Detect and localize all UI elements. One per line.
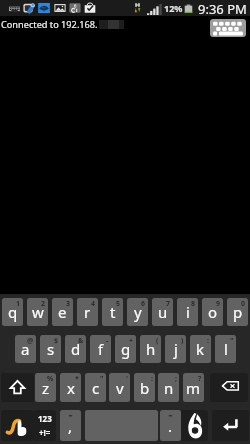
staticText: d [71,339,81,359]
button[interactable]: Select input method [210,19,246,37]
staticText: c [92,378,100,398]
staticText: 9:36 PM [198,0,247,16]
button[interactable]: Comma [60,410,81,441]
button[interactable]: v [109,373,130,402]
staticText: f [98,339,104,359]
staticText: v [116,378,124,398]
button[interactable]: r [77,298,98,326]
button[interactable]: g [115,335,136,363]
staticText: e [58,302,67,322]
button[interactable]: c [85,373,106,402]
staticText: 2 [41,299,46,309]
button[interactable]: i [177,298,198,326]
staticText: y [134,302,142,322]
staticText: s [47,339,55,359]
staticText: j [174,339,178,359]
button[interactable]: Swype input [1,410,33,441]
button[interactable]: d [65,335,86,363]
button[interactable]: h [140,335,161,363]
staticText: p [233,302,243,322]
staticText: ' [126,374,128,384]
button[interactable]: x [60,373,81,402]
staticText: k [196,339,205,359]
button[interactable]: k [190,335,211,363]
staticText: , [68,416,73,436]
button[interactable]: Symbols [33,410,56,441]
staticText: n [164,378,174,398]
button[interactable]: n [158,373,179,402]
button[interactable]: o [202,298,223,326]
staticText: i [186,302,190,322]
button[interactable]: l [215,335,236,363]
staticText: 8 [191,299,196,309]
staticText: % [47,374,54,384]
staticText: ? [198,374,202,384]
button[interactable]: Backspace [210,373,248,402]
staticText: b [140,378,150,398]
staticText: : [207,336,209,346]
staticText: @ [27,336,34,346]
staticText: " [100,374,104,384]
staticText: a [21,339,30,359]
staticText: + [129,336,134,346]
staticText: l [224,339,228,359]
button[interactable]: y [127,298,148,326]
button[interactable]: a [15,335,36,363]
staticText: q [8,302,18,322]
staticText: ) [181,336,184,346]
button[interactable]: t [102,298,123,326]
staticText: 3 [66,299,71,309]
button[interactable]: j [165,335,186,363]
staticText: 12% [164,2,183,14]
button[interactable]: Voice input [181,410,208,441]
staticText: ; [175,374,177,384]
staticText: $ [54,336,59,346]
button[interactable]: z [35,373,56,402]
button[interactable]: f [90,335,111,363]
staticText: : [151,374,153,384]
staticText: r [84,302,91,322]
staticText: * [75,374,79,384]
staticText: 4 [91,299,96,309]
staticText: o [208,302,218,322]
button[interactable]: m [183,373,204,402]
staticText: g [121,339,131,359]
button[interactable]: b [134,373,155,402]
staticText: 123 [38,413,52,424]
button[interactable]: e [52,298,73,326]
staticText: t [110,302,116,322]
button[interactable]: Period [160,410,181,441]
button[interactable]: Shift [1,373,34,402]
button[interactable]: Enter [212,410,249,441]
staticText: 6 [141,299,146,309]
staticText: - [106,336,109,346]
staticText: ( [156,336,159,346]
staticText: 1 [16,299,21,309]
button[interactable]: u [152,298,173,326]
staticText: 9 [216,299,221,309]
staticText: m [186,378,201,398]
staticText: u [158,302,168,322]
button[interactable]: q [2,298,23,326]
staticText: . [168,416,173,436]
staticText: 0 [241,299,246,309]
button[interactable]: p [227,298,248,326]
button[interactable]: s [40,335,61,363]
staticText: z [42,378,50,398]
staticText: w [32,302,44,322]
staticText: " [230,336,234,346]
staticText: +!= [39,427,51,438]
button[interactable]: w [27,298,48,326]
staticText: x [67,378,75,398]
staticText: Connected to 192.168. [1,18,98,30]
staticText: 5 [116,299,121,309]
staticText: & [78,336,84,346]
staticText: 7 [166,299,171,309]
staticText: h [146,339,156,359]
